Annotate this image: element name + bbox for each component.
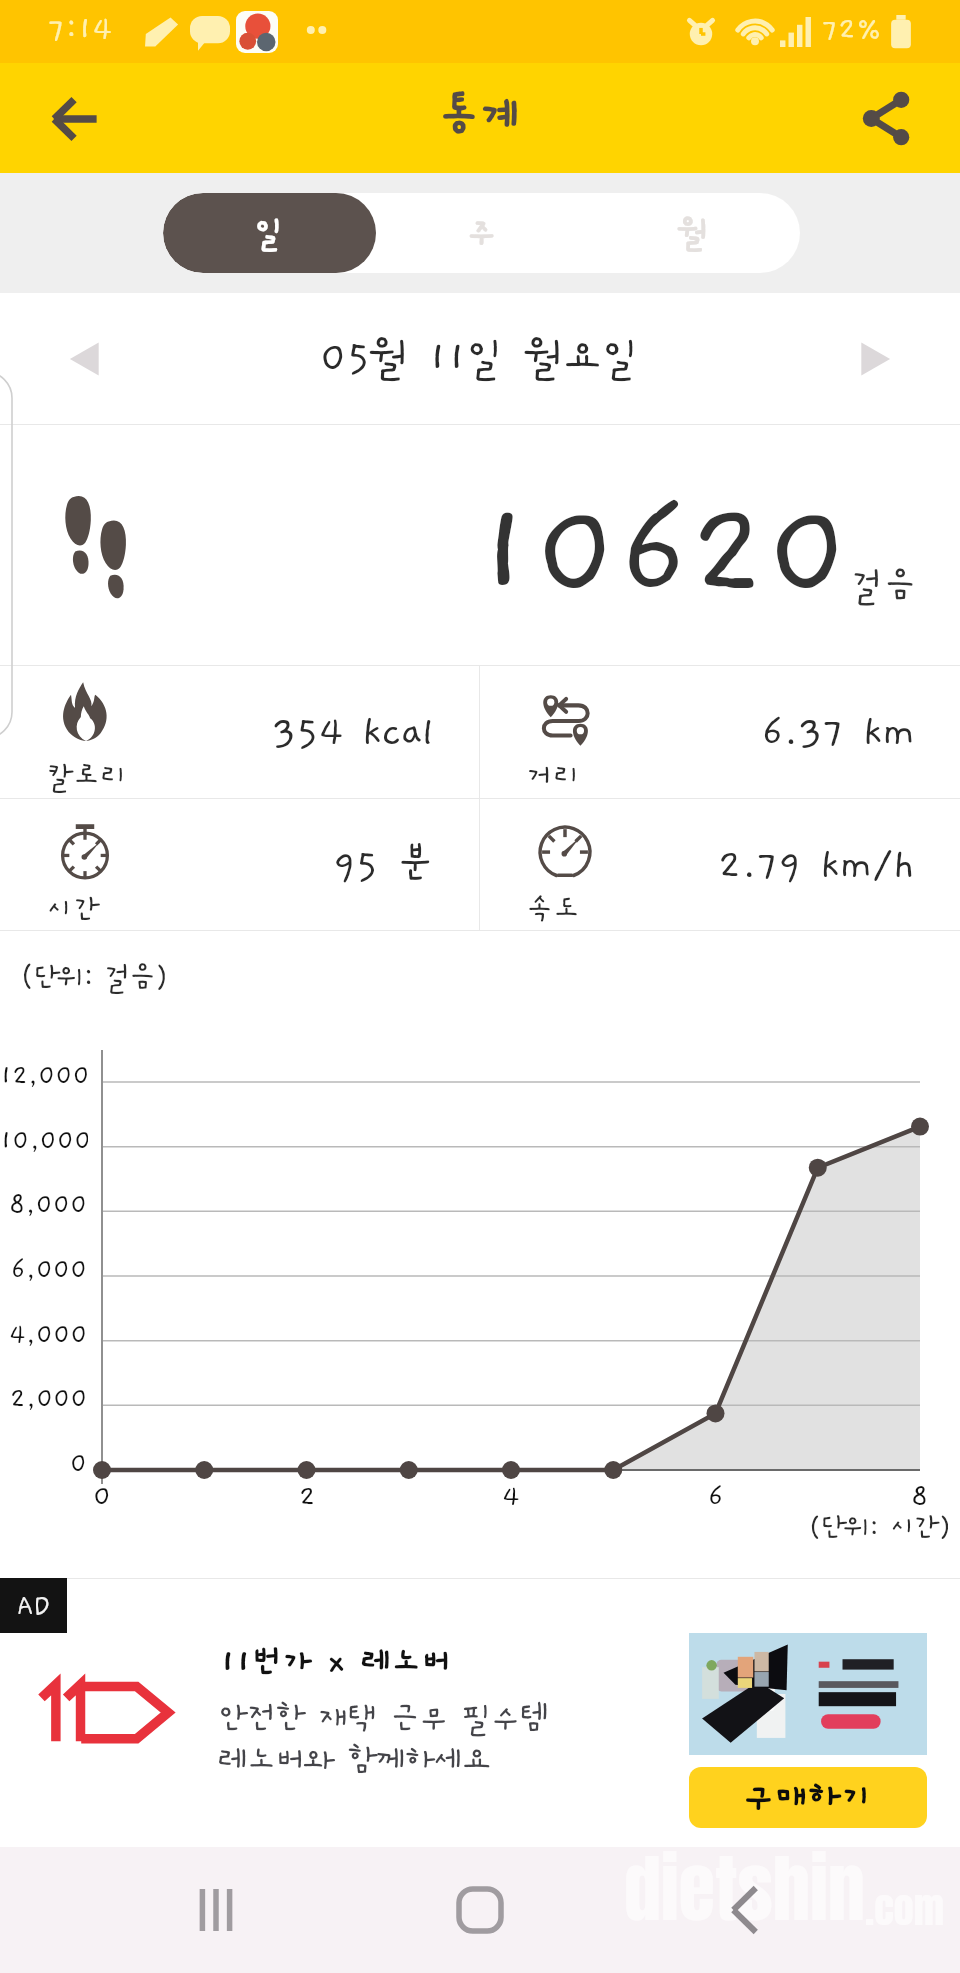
button[interactable]: 일 <box>163 193 376 273</box>
staticText: 월 <box>678 214 710 252</box>
staticText: 걸음 <box>851 566 917 606</box>
button[interactable]: 시간 <box>0 799 479 931</box>
staticText: 8 <box>911 1481 929 1513</box>
button[interactable]: 주 <box>376 193 588 273</box>
button[interactable]: Back <box>696 1862 792 1958</box>
staticText: 거리 <box>526 760 581 793</box>
staticText: 칼로리 <box>46 760 128 793</box>
button[interactable]: Previous day <box>50 324 120 394</box>
staticText: 6 <box>708 1481 724 1513</box>
staticText: 2 <box>299 1481 316 1513</box>
staticText: 통계 <box>438 91 522 142</box>
button[interactable]: Back <box>35 79 115 159</box>
button[interactable]: 구매하기 <box>689 1767 927 1828</box>
staticText: 주 <box>466 214 498 252</box>
button[interactable]: 칼로리 <box>0 666 479 798</box>
staticText: 95 분 <box>0 843 434 888</box>
staticText: 0 <box>70 1449 88 1479</box>
staticText: dietshin <box>624 1833 865 1944</box>
staticText: 속도 <box>526 893 581 926</box>
button[interactable]: Share <box>846 78 926 158</box>
staticText: .com <box>865 1878 944 1938</box>
staticText: 6.37 km <box>480 710 915 755</box>
staticText: 10620 <box>475 479 851 626</box>
staticText: 안전한 재택 근무 필수템 <box>218 1701 549 1737</box>
staticText: 2,000 <box>10 1384 88 1414</box>
staticText: 6,000 <box>11 1255 88 1285</box>
staticText: AD <box>17 1591 51 1621</box>
button[interactable]: Home <box>432 1862 528 1958</box>
staticText: 7:14 <box>48 12 113 48</box>
button[interactable]: Recents <box>168 1862 264 1958</box>
staticText: 12,000 <box>0 1061 88 1091</box>
staticText: (단위: 걸음) <box>20 961 167 994</box>
staticText: 8,000 <box>9 1190 88 1220</box>
button[interactable]: 월 <box>588 193 800 273</box>
staticText: 72% <box>822 13 882 47</box>
staticText: 05월 11일 월요일 <box>320 334 641 381</box>
staticText: 11번가 x 레노버 <box>220 1644 452 1681</box>
staticText: 4 <box>502 1481 520 1513</box>
staticText: 0 <box>93 1481 112 1513</box>
staticText: 시간 <box>46 893 101 926</box>
staticText: 일 <box>254 214 286 252</box>
button[interactable]: 거리 <box>480 666 960 798</box>
button[interactable]: Next day <box>840 324 910 394</box>
staticText: 4,000 <box>9 1320 88 1350</box>
staticText: 레노버와 함께하세요 <box>218 1743 491 1779</box>
staticText: (단위: 시간) <box>808 1512 950 1544</box>
staticText: 354 kcal <box>0 710 434 755</box>
button[interactable]: 속도 <box>480 799 960 931</box>
staticText: 2.79 km/h <box>480 843 915 888</box>
staticText: 10,000 <box>0 1126 88 1156</box>
staticText: 구매하기 <box>742 1778 874 1818</box>
